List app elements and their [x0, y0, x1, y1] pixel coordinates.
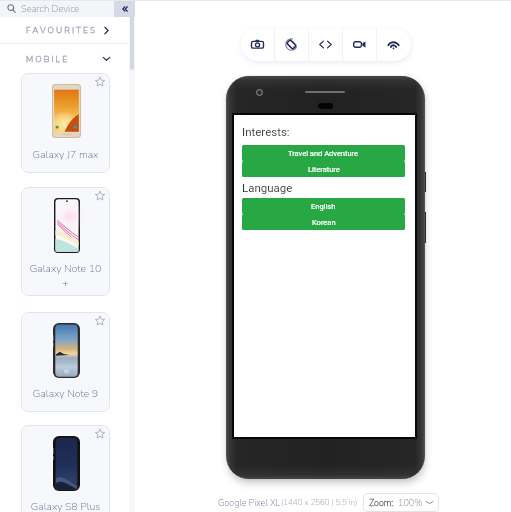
staticText: Interests: — [242, 125, 290, 138]
button[interactable]: Favourite — [21, 312, 110, 412]
button[interactable]: Favourite — [21, 187, 110, 296]
other: Expand — [102, 26, 111, 35]
button[interactable]: Favourite — [21, 425, 110, 512]
staticText: Galaxy S8 Plus — [21, 499, 110, 512]
staticText: FAVOURITES — [26, 24, 98, 36]
staticText: Travel and Adventure — [288, 149, 359, 158]
staticText: Literature — [308, 165, 340, 174]
button[interactable]: Collapse sidebar — [114, 0, 135, 17]
staticText: Search Device — [21, 2, 80, 15]
button[interactable]: Network throttling — [377, 28, 410, 61]
staticText: (1440 x 2560 | 5.5 in) — [281, 497, 358, 508]
button[interactable]: Literature — [242, 161, 405, 177]
button[interactable]: Korean — [242, 214, 405, 230]
button[interactable]: Travel and Adventure — [242, 145, 405, 161]
staticText: Language — [242, 181, 293, 194]
staticText: 100% — [398, 497, 423, 509]
button[interactable]: Inspect code — [309, 28, 342, 61]
staticText: Galaxy Note 10 + — [21, 261, 110, 289]
staticText: Google Pixel XL — [218, 497, 281, 509]
button[interactable]: MOBILE — [0, 44, 135, 73]
staticText: Korean — [312, 218, 336, 227]
button[interactable]: English — [242, 198, 405, 214]
button[interactable]: Screenshot — [241, 28, 274, 61]
button[interactable]: FAVOURITES — [0, 17, 135, 43]
button[interactable]: Record video — [343, 28, 376, 61]
other: Favourite — [95, 316, 105, 326]
staticText: MOBILE — [26, 53, 70, 65]
staticText: Galaxy Note 9 — [21, 386, 110, 400]
other: Favourite — [95, 429, 105, 439]
button[interactable]: Search Device — [0, 0, 114, 17]
staticText: Galaxy J7 max — [21, 147, 110, 161]
other: Favourite — [95, 191, 105, 201]
other: Favourite — [95, 77, 105, 87]
button[interactable]: Zoom: — [363, 493, 439, 512]
button[interactable]: Favourite — [21, 73, 110, 173]
staticText: English — [311, 202, 336, 211]
staticText: Zoom: — [369, 497, 394, 509]
other: Collapse — [102, 54, 111, 63]
button[interactable]: Rotate lock — [275, 28, 308, 61]
